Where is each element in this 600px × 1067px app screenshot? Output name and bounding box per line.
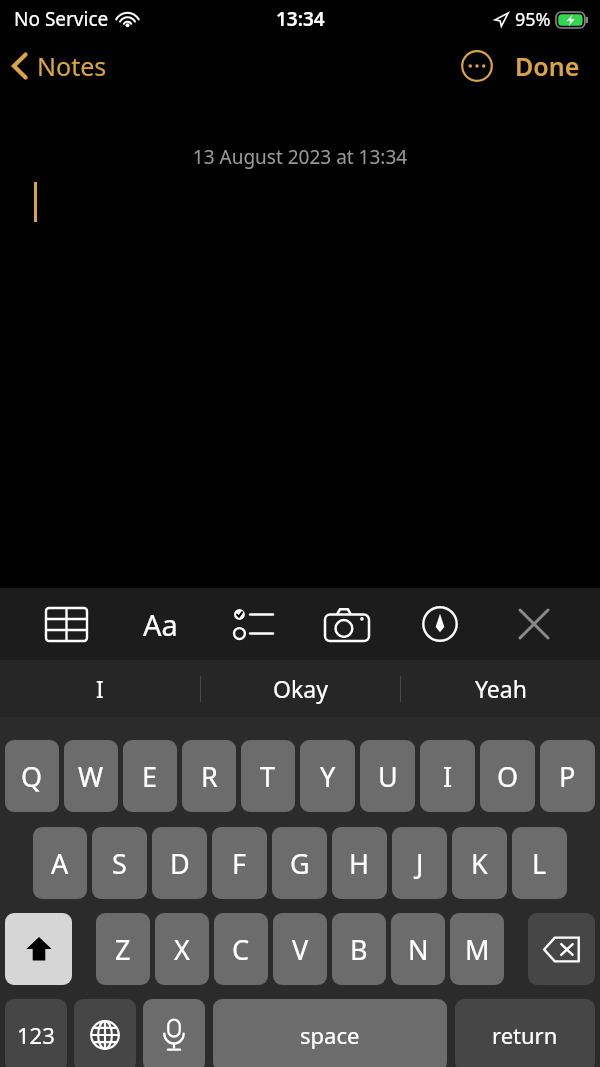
button[interactable]: N bbox=[391, 913, 445, 985]
button[interactable]: R bbox=[182, 740, 236, 812]
staticText: L bbox=[532, 845, 547, 882]
button[interactable]: Camera bbox=[314, 592, 380, 656]
staticText: return bbox=[492, 1020, 558, 1050]
button[interactable]: C bbox=[214, 913, 268, 985]
staticText: U bbox=[378, 758, 398, 795]
button[interactable]: A bbox=[33, 827, 87, 899]
button[interactable]: G bbox=[272, 827, 327, 899]
button[interactable]: I bbox=[420, 740, 475, 812]
button[interactable]: Done bbox=[509, 41, 586, 91]
staticText: D bbox=[170, 845, 190, 882]
staticText: B bbox=[350, 931, 368, 968]
button[interactable]: E bbox=[123, 740, 177, 812]
staticText: X bbox=[174, 931, 190, 968]
staticText: I bbox=[96, 673, 104, 704]
button[interactable]: Markup bbox=[407, 592, 473, 656]
button[interactable]: Q bbox=[5, 740, 59, 812]
staticText: Y bbox=[320, 758, 336, 795]
staticText: Notes bbox=[37, 49, 107, 83]
button[interactable]: D bbox=[152, 827, 207, 899]
button[interactable]: Shift bbox=[5, 913, 72, 985]
button[interactable]: Backspace bbox=[528, 913, 595, 985]
staticText: Done bbox=[515, 49, 580, 83]
button[interactable]: F bbox=[212, 827, 267, 899]
staticText: Okay bbox=[273, 673, 328, 704]
button[interactable]: M bbox=[450, 913, 504, 985]
button[interactable]: Text format bbox=[127, 592, 193, 656]
button[interactable]: O bbox=[480, 740, 535, 812]
staticText: R bbox=[201, 758, 218, 795]
button[interactable]: Table bbox=[33, 592, 99, 656]
staticText: K bbox=[471, 845, 488, 882]
button[interactable]: Okay bbox=[201, 660, 400, 717]
staticText: M bbox=[465, 931, 490, 968]
button[interactable]: H bbox=[332, 827, 387, 899]
staticText: 13 August 2023 at 13:34 bbox=[0, 144, 600, 170]
button[interactable]: I bbox=[0, 660, 200, 717]
button[interactable]: B bbox=[332, 913, 386, 985]
button[interactable]: J bbox=[392, 827, 447, 899]
staticText: S bbox=[112, 845, 127, 882]
staticText: I bbox=[443, 758, 453, 795]
button[interactable]: X bbox=[155, 913, 209, 985]
staticText: A bbox=[51, 845, 69, 882]
button[interactable]: Next keyboard bbox=[74, 999, 136, 1067]
button[interactable]: L bbox=[512, 827, 567, 899]
button[interactable]: space bbox=[213, 999, 447, 1067]
staticText: Q bbox=[21, 758, 43, 795]
staticText: Aa bbox=[143, 605, 178, 644]
staticText: P bbox=[559, 758, 576, 795]
staticText: 13:34 bbox=[276, 6, 325, 32]
button[interactable]: Dictation bbox=[143, 999, 205, 1067]
staticText: Z bbox=[115, 931, 131, 968]
staticText: C bbox=[232, 931, 250, 968]
staticText: J bbox=[416, 845, 424, 882]
staticText: N bbox=[408, 931, 429, 968]
button[interactable]: More options bbox=[455, 44, 499, 88]
staticText: T bbox=[260, 758, 276, 795]
button[interactable]: W bbox=[64, 740, 118, 812]
button[interactable]: U bbox=[360, 740, 415, 812]
button[interactable]: Checklist bbox=[220, 592, 286, 656]
staticText: F bbox=[232, 845, 247, 882]
button[interactable]: return bbox=[455, 999, 595, 1067]
button[interactable]: Close keyboard bbox=[501, 592, 567, 656]
button[interactable]: S bbox=[92, 827, 147, 899]
staticText: E bbox=[142, 758, 158, 795]
button[interactable]: Y bbox=[300, 740, 355, 812]
staticText: O bbox=[497, 758, 519, 795]
button[interactable]: T bbox=[241, 740, 295, 812]
button[interactable]: Notes bbox=[0, 43, 119, 89]
button[interactable]: Yeah bbox=[401, 660, 600, 717]
button[interactable]: V bbox=[273, 913, 327, 985]
staticText: G bbox=[290, 845, 310, 882]
staticText: V bbox=[292, 931, 309, 968]
staticText: 95% bbox=[515, 7, 551, 32]
button[interactable]: 123 bbox=[5, 999, 67, 1067]
staticText: H bbox=[349, 845, 370, 882]
button[interactable]: P bbox=[540, 740, 595, 812]
staticText: W bbox=[78, 758, 104, 795]
button[interactable]: Z bbox=[96, 913, 150, 985]
staticText: Yeah bbox=[475, 673, 527, 704]
button[interactable]: K bbox=[452, 827, 507, 899]
staticText: No Service bbox=[14, 6, 109, 32]
staticText: space bbox=[300, 1020, 360, 1050]
staticText: 123 bbox=[17, 1020, 55, 1050]
